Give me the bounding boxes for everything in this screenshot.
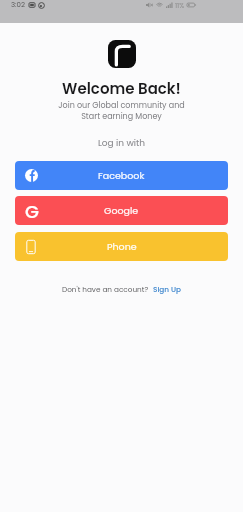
button[interactable]: Phone (15, 232, 228, 261)
staticText: Log in with (0, 137, 243, 150)
staticText: Facebook (98, 169, 145, 182)
staticText: 11% (175, 1, 185, 10)
staticText: Sign Up (153, 284, 181, 294)
staticText: Welcome Back! (0, 78, 243, 99)
button[interactable]: Facebook (15, 161, 228, 190)
button[interactable]: Sign Up (153, 284, 181, 294)
staticText: Don't have an account? (62, 284, 149, 294)
staticText: G (25, 199, 39, 221)
staticText: Join our Global community and Start earn… (0, 100, 243, 122)
staticText: Google (104, 204, 139, 217)
staticText: Phone (107, 240, 137, 253)
button[interactable]: Google (15, 196, 228, 225)
staticText: 3:02 (11, 0, 26, 10)
